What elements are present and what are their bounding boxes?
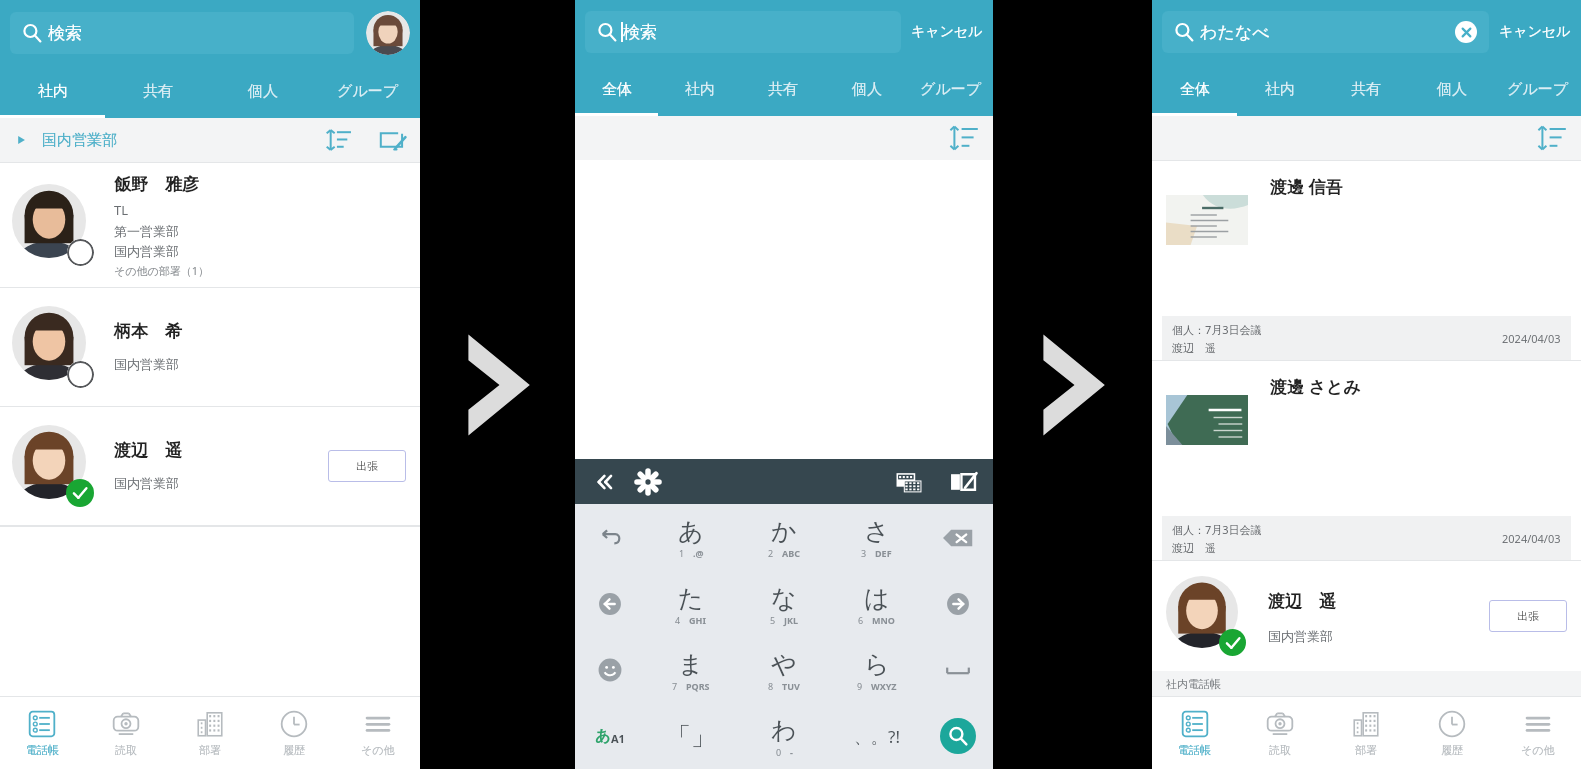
button[interactable]: グループ	[315, 64, 420, 118]
button[interactable]: 社内	[0, 64, 105, 118]
button[interactable]: 国内営業部	[14, 118, 406, 162]
button[interactable]: 「」	[644, 703, 737, 769]
staticText: 渡辺 遥	[1172, 340, 1216, 355]
button[interactable]: Search	[923, 703, 993, 769]
button[interactable]: あ	[575, 703, 644, 769]
button[interactable]: その他	[1495, 697, 1581, 769]
staticText: 出張	[1517, 609, 1539, 623]
button[interactable]: undo	[575, 504, 644, 571]
staticText: 0	[776, 746, 782, 758]
button[interactable]: キャンセル	[911, 23, 983, 41]
button[interactable]: 柄本 希	[12, 288, 406, 406]
button[interactable]: や	[737, 637, 830, 703]
button[interactable]: わたなべ	[1174, 11, 1477, 53]
button[interactable]: 電話帳	[1152, 697, 1237, 769]
button[interactable]: Keyboard layout	[893, 466, 925, 498]
button[interactable]: 共有	[741, 62, 825, 116]
staticText: あ	[678, 516, 704, 547]
button[interactable]: 渡邊 信吾	[1166, 161, 1567, 316]
button[interactable]: space	[923, 637, 993, 703]
button[interactable]: 、。?!	[830, 703, 923, 769]
button[interactable]: Sort	[949, 123, 979, 153]
staticText: 社内電話帳	[1166, 677, 1221, 691]
button[interactable]: 全体	[575, 62, 658, 116]
button[interactable]: emoji	[575, 637, 644, 703]
button[interactable]: 個人	[210, 64, 315, 118]
staticText: 共有	[1351, 80, 1381, 99]
button[interactable]: 渡邊 さとみ	[1166, 361, 1567, 516]
staticText: 全体	[602, 80, 632, 99]
button[interactable]: 社内	[1237, 62, 1323, 116]
button[interactable]: Settings	[633, 467, 663, 497]
button[interactable]: Profile	[366, 11, 410, 55]
button[interactable]: は	[830, 571, 923, 637]
staticText: 、。?!	[854, 725, 900, 748]
button[interactable]: 共有	[105, 64, 210, 118]
button[interactable]: 全体	[1152, 62, 1237, 116]
staticText: わたなべ	[1200, 22, 1270, 43]
button[interactable]: 個人	[1409, 62, 1495, 116]
button[interactable]: あ	[644, 504, 737, 571]
staticText: 個人	[1437, 80, 1467, 99]
button[interactable]: 出張	[1489, 600, 1567, 632]
button[interactable]: な	[737, 571, 830, 637]
button[interactable]: 部署	[1323, 697, 1409, 769]
button[interactable]: 共有	[1323, 62, 1409, 116]
button[interactable]: Collapse	[589, 467, 619, 497]
button[interactable]: さ	[830, 504, 923, 571]
button[interactable]: グループ	[909, 62, 993, 116]
button[interactable]: ら	[830, 637, 923, 703]
staticText: 1	[679, 547, 685, 559]
button[interactable]: backspace	[923, 504, 993, 571]
button[interactable]: 履歴	[1409, 697, 1495, 769]
staticText: 渡辺 遥	[1172, 540, 1216, 555]
staticText: 部署	[199, 743, 221, 757]
staticText: か	[771, 516, 797, 547]
button[interactable]: Sort	[1537, 123, 1567, 153]
staticText: 3	[861, 547, 867, 559]
staticText: た	[678, 583, 704, 614]
button[interactable]: ま	[644, 637, 737, 703]
button[interactable]: next	[923, 571, 993, 637]
staticText: 電話帳	[1178, 743, 1211, 757]
staticText: PQRS	[686, 680, 710, 692]
staticText: 検索	[623, 22, 657, 43]
button[interactable]: Sort	[326, 127, 352, 153]
staticText: その他	[361, 743, 395, 757]
button[interactable]: グループ	[1495, 62, 1581, 116]
staticText: キャンセル	[911, 23, 983, 41]
staticText: 4	[675, 614, 681, 626]
button[interactable]: 検索	[22, 12, 342, 54]
button[interactable]: 飯野 雅彦	[12, 163, 406, 287]
button[interactable]: 個人	[825, 62, 909, 116]
button[interactable]: 社内	[658, 62, 741, 116]
button[interactable]: キャンセル	[1499, 23, 1571, 41]
button[interactable]: 電話帳	[0, 697, 84, 769]
button[interactable]: 渡辺 遥	[1166, 561, 1567, 671]
button[interactable]: 出張	[328, 450, 406, 482]
staticText: 国内営業部	[114, 356, 179, 372]
button[interactable]: 渡辺 遥	[12, 407, 406, 525]
button[interactable]: Dictionary	[947, 466, 979, 498]
other: Search	[940, 718, 976, 754]
staticText: 個人：7月3日会議	[1172, 522, 1262, 537]
button[interactable]: 読取	[1237, 697, 1323, 769]
button[interactable]: 履歴	[252, 697, 336, 769]
staticText: グループ	[337, 82, 399, 101]
button[interactable]: 読取	[84, 697, 168, 769]
staticText: 2	[768, 547, 774, 559]
button[interactable]: その他	[336, 697, 420, 769]
staticText: DEF	[875, 547, 892, 559]
button[interactable]: 検索	[597, 11, 889, 53]
staticText: さ	[864, 516, 890, 547]
staticText: 個人	[852, 80, 882, 99]
button[interactable]: 部署	[168, 697, 252, 769]
button[interactable]: Edit	[378, 126, 406, 154]
button[interactable]: た	[644, 571, 737, 637]
button[interactable]: か	[737, 504, 830, 571]
staticText: 「」	[666, 721, 716, 752]
button[interactable]: Clear	[1455, 21, 1477, 43]
button[interactable]: prev	[575, 571, 644, 637]
staticText: 8	[768, 680, 774, 692]
button[interactable]: わ	[737, 703, 830, 769]
